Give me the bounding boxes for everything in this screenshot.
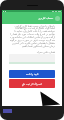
staticText: شماره تلفن همراه	[9, 50, 55, 53]
staticText: انصراف از ثبت نام	[22, 82, 42, 86]
button[interactable]	[9, 54, 55, 64]
staticText: حساب کاربری	[38, 16, 54, 20]
staticText: با سلام و احترام خدمت شما کاربر گرامی، ل…	[9, 24, 55, 48]
button[interactable]: تایید و ادامه	[9, 70, 55, 78]
button[interactable]: انصراف از ثبت نام	[9, 79, 55, 88]
staticText: تایید و ادامه	[26, 72, 39, 76]
button[interactable]: حساب کاربری	[2, 12, 62, 24]
other: Profile	[55, 16, 60, 21]
